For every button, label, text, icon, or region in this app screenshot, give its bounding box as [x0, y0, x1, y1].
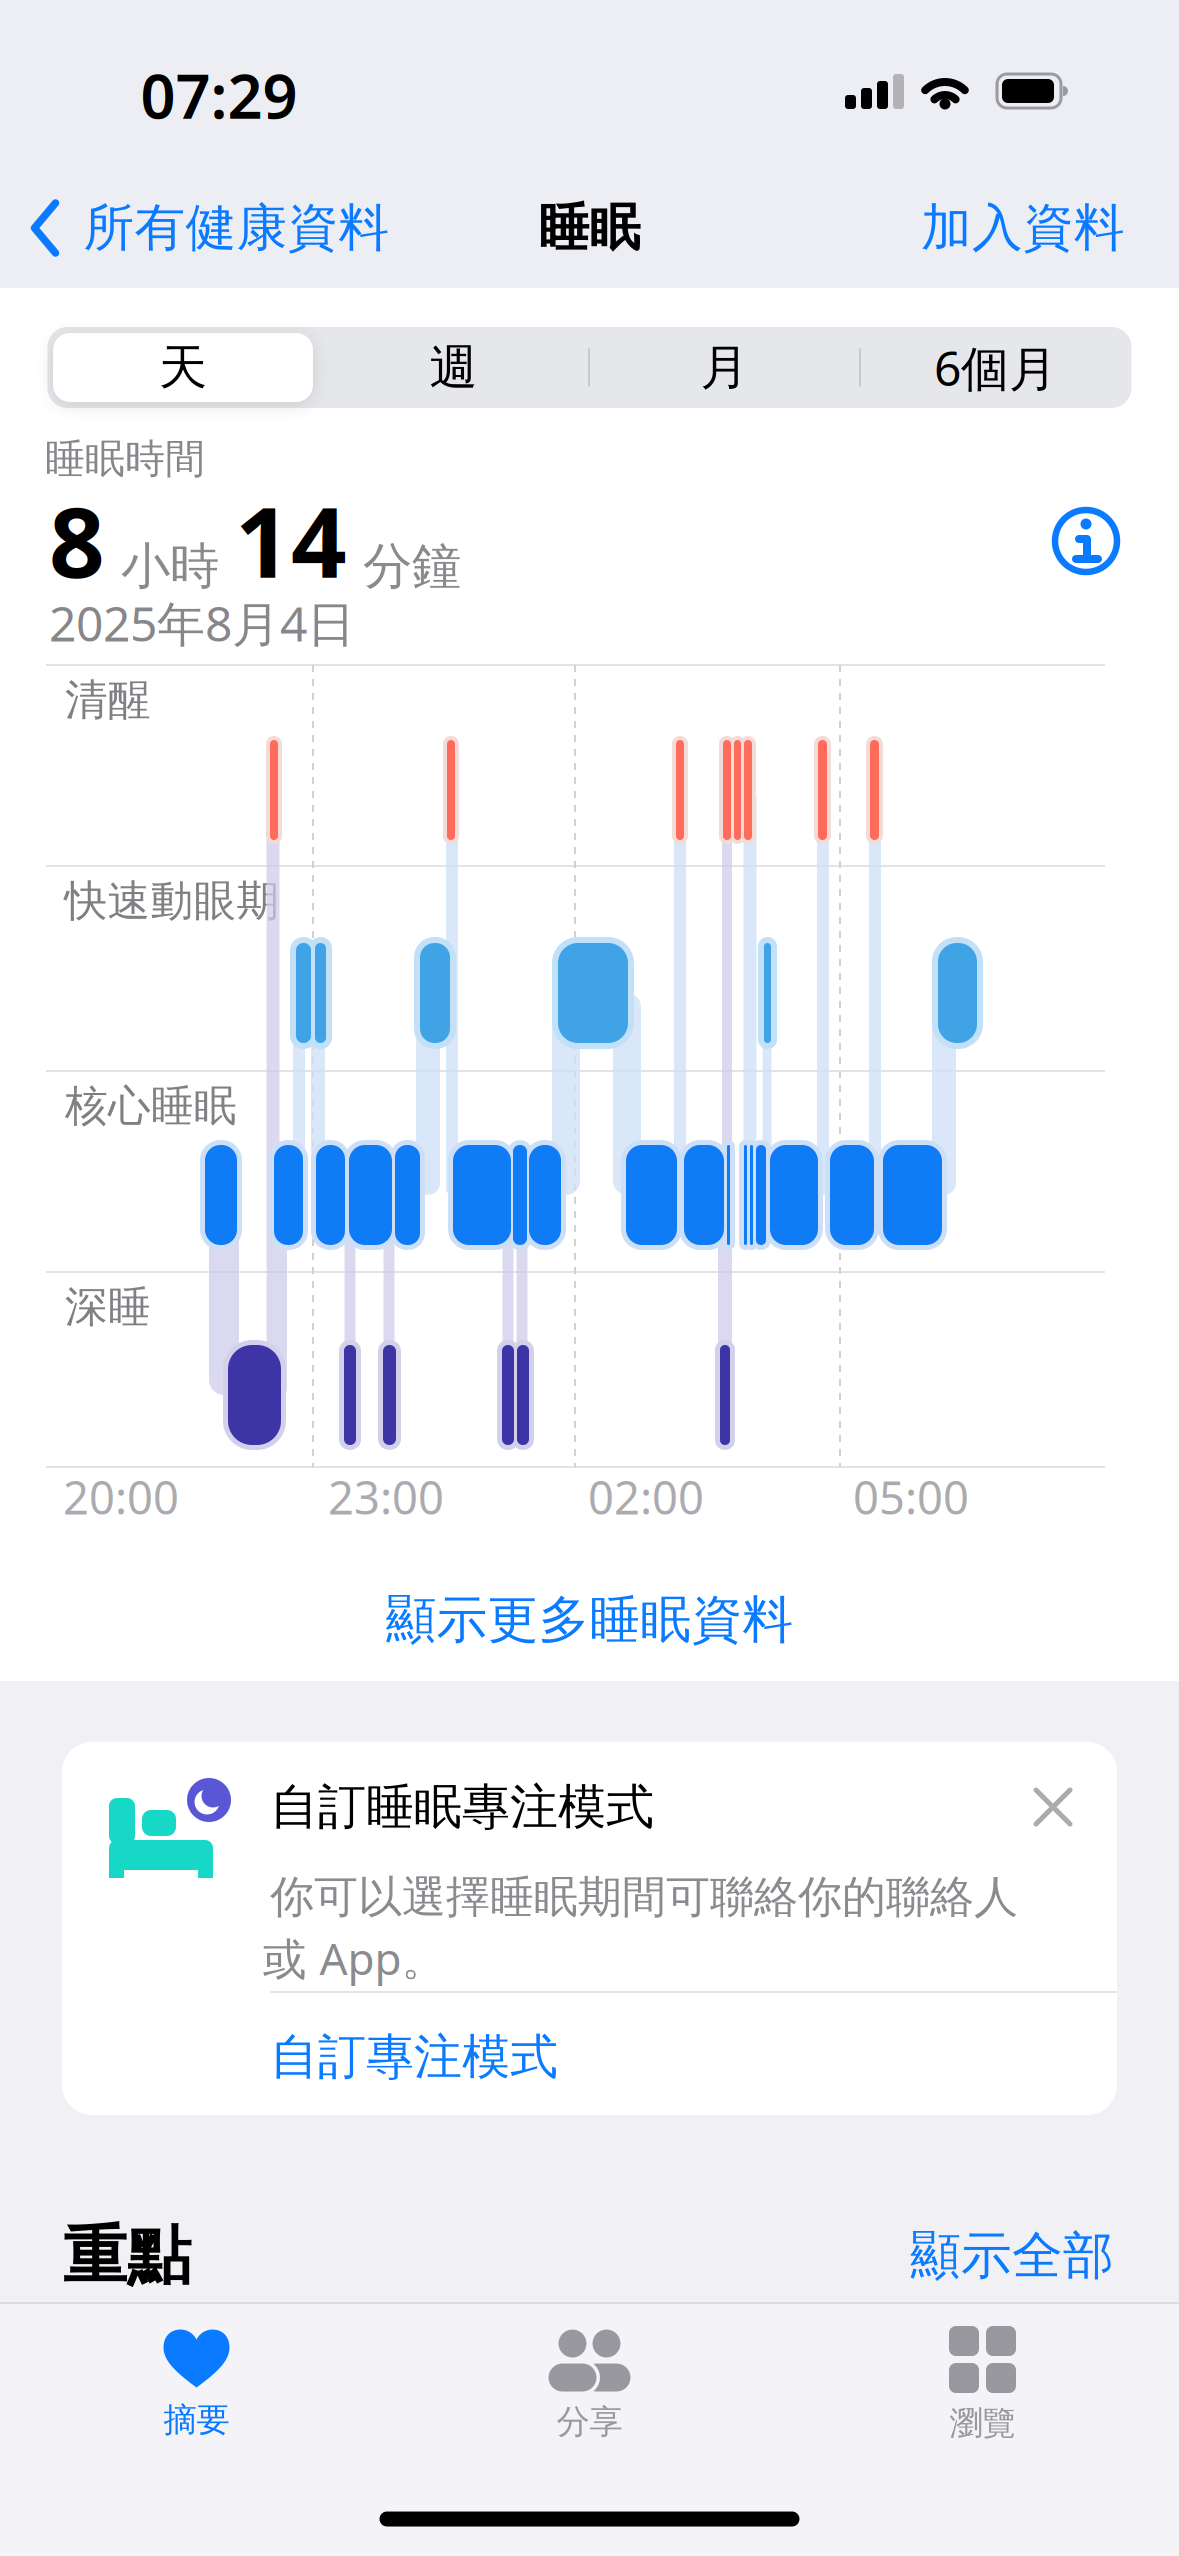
staticText: 清醒	[65, 674, 151, 726]
button[interactable]: 摘要	[163, 2329, 229, 2440]
staticText: 睡眠	[538, 197, 640, 259]
staticText: 核心睡眠	[65, 1080, 237, 1132]
staticText: 所有健康資料	[83, 197, 389, 259]
staticText: 自訂專注模式	[270, 2027, 558, 2086]
button[interactable]: 瀏覽	[949, 2326, 1016, 2444]
button[interactable]: 自訂專注模式	[270, 2027, 558, 2086]
staticText: 睡眠時間	[45, 434, 205, 483]
staticText: 分享	[556, 2401, 622, 2442]
staticText: 分鐘	[363, 536, 461, 597]
staticText: 顯示更多睡眠資料	[385, 1589, 793, 1651]
button[interactable]: 所有健康資料	[30, 197, 389, 259]
button[interactable]: 分享	[544, 2327, 634, 2442]
staticText: 07:29	[140, 54, 297, 136]
staticText: 顯示全部	[910, 2225, 1114, 2287]
staticText: 週	[429, 338, 477, 397]
staticText: 快速動眼期	[64, 875, 279, 927]
staticText: 月	[700, 338, 748, 397]
staticText: 摘要	[163, 2399, 229, 2440]
button[interactable]: 6個月	[934, 336, 1057, 399]
staticText: 2025年8月4日	[49, 591, 355, 655]
staticText: 20:00	[63, 1467, 179, 1527]
button[interactable]: 關閉	[1030, 1784, 1076, 1830]
staticText: 自訂睡眠專注模式	[270, 1777, 654, 1836]
staticText: 小時	[121, 536, 219, 597]
button[interactable]: 天	[53, 333, 313, 402]
staticText: 你可以選擇睡眠期間可聯絡你的聯絡人	[270, 1870, 1018, 1924]
staticText: 02:00	[588, 1467, 704, 1527]
staticText: 天	[159, 338, 207, 397]
staticText: 重點	[63, 2217, 191, 2295]
button[interactable]: 加入資料	[921, 197, 1125, 259]
staticText: 23:00	[328, 1467, 444, 1527]
staticText: 或 App。	[262, 1929, 445, 1987]
staticText: 深睡	[65, 1281, 151, 1333]
staticText: 14	[235, 475, 347, 605]
staticText: 05:00	[853, 1467, 969, 1527]
button[interactable]: 顯示全部	[910, 2225, 1114, 2287]
staticText: 6個月	[934, 336, 1057, 399]
button[interactable]: 週	[429, 338, 477, 397]
staticText: 加入資料	[921, 197, 1125, 259]
button[interactable]: 顯示更多睡眠資料	[385, 1589, 793, 1651]
staticText: 8	[49, 475, 105, 605]
button[interactable]: 月	[700, 338, 748, 397]
button[interactable]: 關於睡眠	[1052, 507, 1120, 575]
staticText: 瀏覽	[949, 2403, 1015, 2444]
